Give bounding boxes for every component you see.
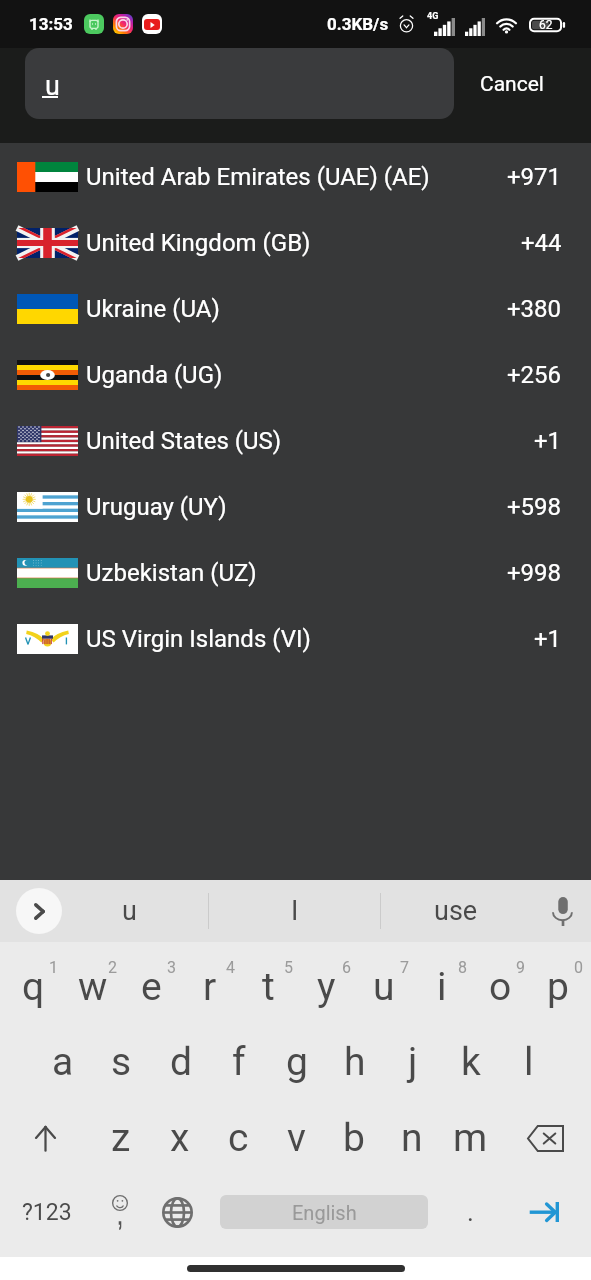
button[interactable]: u: [58, 880, 200, 942]
button[interactable]: j: [384, 1024, 442, 1100]
staticText: w: [78, 964, 108, 1010]
button[interactable]: I: [209, 880, 380, 942]
button[interactable]: c: [209, 1100, 267, 1176]
staticText: English: [292, 1201, 357, 1224]
staticText: l: [524, 1039, 534, 1085]
staticText: Ukraine (UA): [86, 295, 220, 323]
staticText: f: [232, 1039, 246, 1085]
staticText: 5: [284, 958, 293, 977]
button[interactable]: f: [210, 1024, 268, 1100]
button[interactable]: Uzbekistan (UZ): [0, 540, 591, 606]
staticText: h: [344, 1039, 366, 1085]
staticText: b: [343, 1115, 365, 1161]
staticText: +256: [507, 361, 562, 389]
staticText: Uzbekistan (UZ): [86, 559, 257, 587]
staticText: 3: [167, 958, 176, 977]
button[interactable]: l: [500, 1024, 558, 1100]
button[interactable]: q: [4, 950, 63, 1026]
staticText: Uruguay (UY): [86, 493, 227, 521]
button[interactable]: Change language: [147, 1174, 208, 1250]
button[interactable]: o: [471, 950, 529, 1026]
button[interactable]: n: [383, 1100, 441, 1176]
staticText: u: [373, 964, 395, 1010]
button[interactable]: d: [151, 1024, 210, 1100]
button[interactable]: p: [529, 950, 587, 1026]
button[interactable]: e: [122, 950, 181, 1026]
button[interactable]: United States (US): [0, 408, 591, 474]
button[interactable]: .: [440, 1174, 500, 1250]
staticText: n: [401, 1115, 423, 1161]
staticText: v: [287, 1115, 306, 1161]
button[interactable]: a: [33, 1024, 92, 1100]
staticText: .: [467, 1197, 474, 1227]
button[interactable]: Expand toolbar: [16, 888, 62, 934]
staticText: +380: [507, 295, 562, 323]
staticText: ?123: [22, 1199, 72, 1226]
staticText: r: [203, 964, 217, 1010]
staticText: +1: [534, 427, 562, 455]
staticText: o: [489, 964, 512, 1010]
button[interactable]: English: [220, 1195, 428, 1229]
staticText: +44: [521, 229, 562, 257]
button[interactable]: Emoji: [93, 1174, 147, 1250]
staticText: 7: [400, 958, 409, 977]
button[interactable]: Enter: [500, 1174, 586, 1250]
staticText: m: [453, 1115, 488, 1161]
staticText: 4G: [427, 11, 439, 22]
button[interactable]: United Kingdom (GB): [0, 210, 591, 276]
button[interactable]: r: [181, 950, 239, 1026]
button[interactable]: v: [267, 1100, 325, 1176]
staticText: United Kingdom (GB): [86, 229, 311, 257]
button[interactable]: x: [150, 1100, 209, 1176]
staticText: Cancel: [480, 72, 544, 97]
button[interactable]: b: [325, 1100, 383, 1176]
staticText: 2: [108, 958, 117, 977]
staticText: 0.3KB/s: [327, 14, 389, 34]
staticText: t: [262, 964, 275, 1010]
button[interactable]: Voice input: [537, 887, 585, 935]
staticText: use: [434, 895, 478, 927]
staticText: 62: [539, 18, 553, 32]
staticText: k: [461, 1039, 481, 1085]
button[interactable]: z: [91, 1100, 150, 1176]
button[interactable]: g: [268, 1024, 326, 1100]
button[interactable]: Uganda (UG): [0, 342, 591, 408]
button[interactable]: i: [413, 950, 471, 1026]
button[interactable]: Uruguay (UY): [0, 474, 591, 540]
staticText: c: [228, 1115, 249, 1161]
staticText: Uganda (UG): [86, 361, 223, 389]
staticText: i: [437, 964, 447, 1010]
button[interactable]: United Arab Emirates (UAE) (AE): [0, 144, 591, 210]
button[interactable]: m: [441, 1100, 499, 1176]
staticText: US Virgin Islands (VI): [86, 625, 311, 653]
staticText: q: [22, 964, 45, 1010]
button[interactable]: u: [355, 950, 413, 1026]
staticText: 1: [49, 958, 58, 977]
staticText: 13:53: [29, 14, 73, 34]
staticText: j: [408, 1039, 418, 1085]
button[interactable]: w: [63, 950, 122, 1026]
staticText: United States (US): [86, 427, 282, 455]
staticText: +971: [507, 163, 562, 191]
staticText: u: [122, 895, 137, 927]
staticText: p: [547, 964, 569, 1010]
button[interactable]: Shift: [0, 1100, 91, 1176]
button[interactable]: use: [381, 880, 531, 942]
staticText: 6: [342, 958, 351, 977]
staticText: 4: [226, 958, 235, 977]
staticText: +598: [507, 493, 562, 521]
button[interactable]: Ukraine (UA): [0, 276, 591, 342]
button[interactable]: u: [25, 48, 454, 119]
button[interactable]: s: [92, 1024, 151, 1100]
button[interactable]: t: [239, 950, 297, 1026]
button[interactable]: k: [442, 1024, 500, 1100]
button[interactable]: y: [297, 950, 355, 1026]
button[interactable]: Backspace: [499, 1100, 591, 1176]
button[interactable]: Cancel: [454, 48, 591, 119]
button[interactable]: US Virgin Islands (VI): [0, 606, 591, 672]
button[interactable]: ?123: [0, 1174, 93, 1250]
staticText: 9: [516, 958, 525, 977]
staticText: I: [291, 895, 299, 927]
staticText: d: [170, 1039, 192, 1085]
button[interactable]: h: [326, 1024, 384, 1100]
